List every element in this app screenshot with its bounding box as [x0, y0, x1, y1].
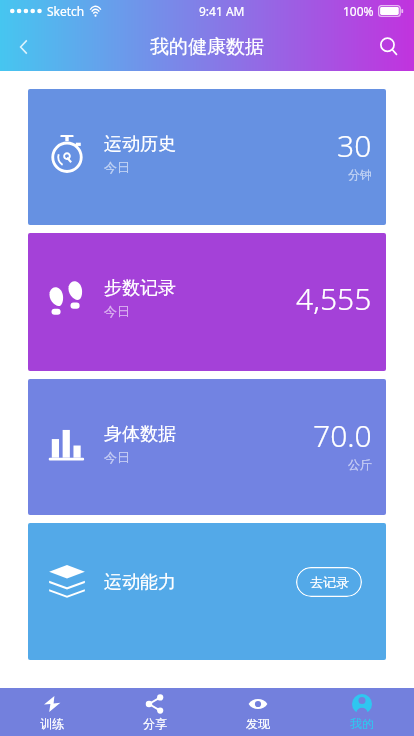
staticText: 30: [337, 125, 372, 166]
staticText: 今日: [104, 159, 130, 175]
staticText: 100%: [343, 3, 374, 19]
button[interactable]: 运动历史: [28, 89, 386, 225]
staticText: 去记录: [310, 574, 349, 590]
button[interactable]: 训练: [0, 688, 103, 736]
button[interactable]: Search: [364, 22, 414, 71]
button[interactable]: Back: [0, 23, 48, 71]
staticText: 分钟: [348, 167, 372, 182]
staticText: 运动历史: [104, 133, 176, 156]
button[interactable]: 运动能力: [28, 523, 386, 660]
button[interactable]: 发现: [206, 688, 310, 736]
staticText: 今日: [104, 303, 130, 319]
staticText: 今日: [104, 449, 130, 465]
staticText: 步数记录: [104, 277, 176, 300]
staticText: Sketch: [47, 3, 85, 19]
staticText: 训练: [40, 716, 64, 731]
staticText: 9:41 AM: [199, 3, 245, 19]
staticText: 发现: [246, 716, 270, 731]
button[interactable]: 身体数据: [28, 379, 386, 515]
staticText: 身体数据: [104, 423, 176, 446]
button[interactable]: 分享: [103, 688, 206, 736]
button[interactable]: 去记录: [296, 567, 362, 597]
button[interactable]: 步数记录: [28, 233, 386, 371]
staticText: 运动能力: [104, 571, 176, 594]
button[interactable]: 我的: [310, 688, 414, 736]
staticText: 分享: [143, 716, 167, 731]
staticText: 公斤: [348, 457, 372, 472]
staticText: 我的健康数据: [150, 35, 264, 59]
staticText: 4,555: [296, 278, 372, 319]
staticText: 我的: [350, 716, 374, 731]
staticText: 70.0: [313, 415, 372, 456]
